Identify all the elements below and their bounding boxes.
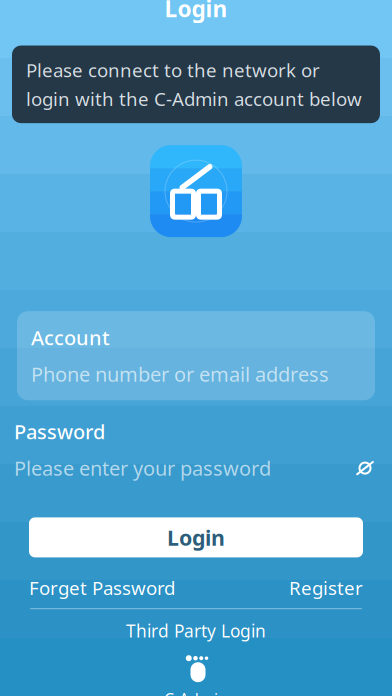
staticText: Forget Password [29, 575, 175, 600]
staticText: Phone number or email address [31, 361, 329, 387]
staticText: Third Party Login [126, 619, 266, 642]
button[interactable]: Register [289, 575, 363, 600]
staticText: C-Admin [164, 688, 228, 696]
staticText: Register [289, 575, 363, 600]
button[interactable]: Forget Password [29, 575, 175, 600]
button[interactable]: C-Admin [148, 652, 244, 696]
staticText: Please enter your password [14, 455, 271, 481]
staticText: Account [31, 324, 110, 351]
staticText: Password [14, 418, 105, 445]
staticText: Login [164, 0, 227, 24]
button[interactable]: Show password [352, 457, 378, 479]
button[interactable]: Login [29, 517, 363, 557]
staticText: Login [167, 523, 225, 551]
staticText: Please connect to the network or login w… [26, 58, 362, 111]
